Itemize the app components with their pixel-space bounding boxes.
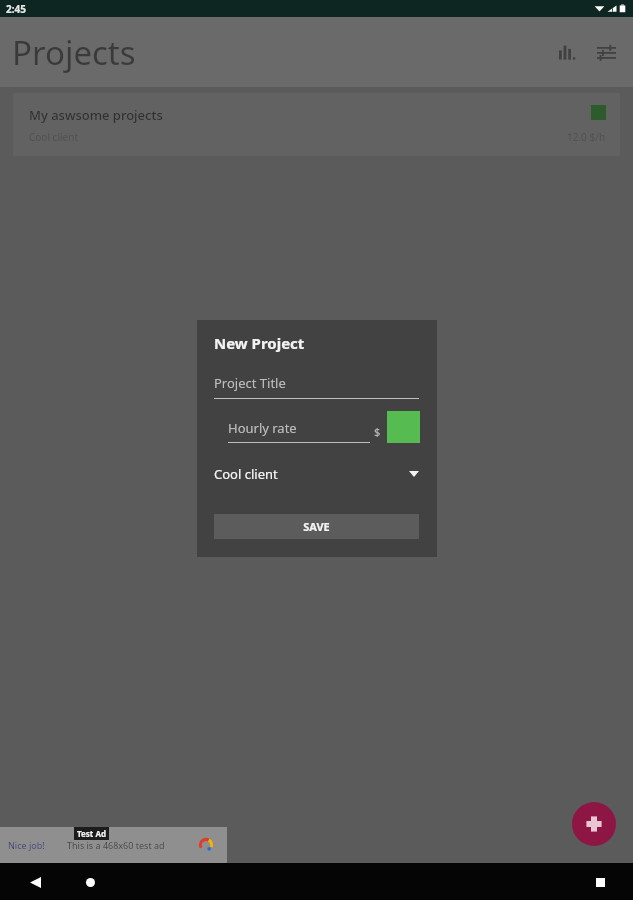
staticText: Cool client	[29, 130, 78, 144]
staticText: This is a 468x60 test ad	[67, 839, 165, 851]
button[interactable]: Hourly rate	[228, 419, 370, 443]
staticText: Cool client	[214, 465, 278, 483]
staticText: Test Ad	[77, 828, 106, 839]
button[interactable]: Back	[17, 864, 53, 900]
staticText: Hourly rate	[228, 419, 297, 437]
staticText: New Project	[214, 333, 305, 353]
button[interactable]: Cool client	[214, 459, 419, 489]
button[interactable]: Add project	[572, 802, 616, 846]
staticText: 2:45	[6, 2, 26, 16]
staticText: Nice job!	[8, 839, 45, 851]
staticText: Project Title	[214, 374, 286, 392]
staticText: Projects	[12, 30, 136, 75]
button[interactable]: Statistics	[550, 35, 584, 69]
button[interactable]: My aswsome projects	[13, 93, 620, 156]
button[interactable]: Home	[72, 864, 108, 900]
button[interactable]: Filter	[589, 35, 623, 69]
staticText: My aswsome projects	[29, 106, 163, 124]
button[interactable]: SAVE	[214, 514, 419, 539]
button[interactable]: Project Title	[214, 374, 419, 399]
staticText: 12.0 $/h	[567, 130, 606, 144]
staticText: $	[374, 424, 381, 439]
button[interactable]: Recents	[582, 864, 618, 900]
staticText: SAVE	[303, 519, 330, 534]
button[interactable]: Nice job!	[0, 827, 227, 863]
